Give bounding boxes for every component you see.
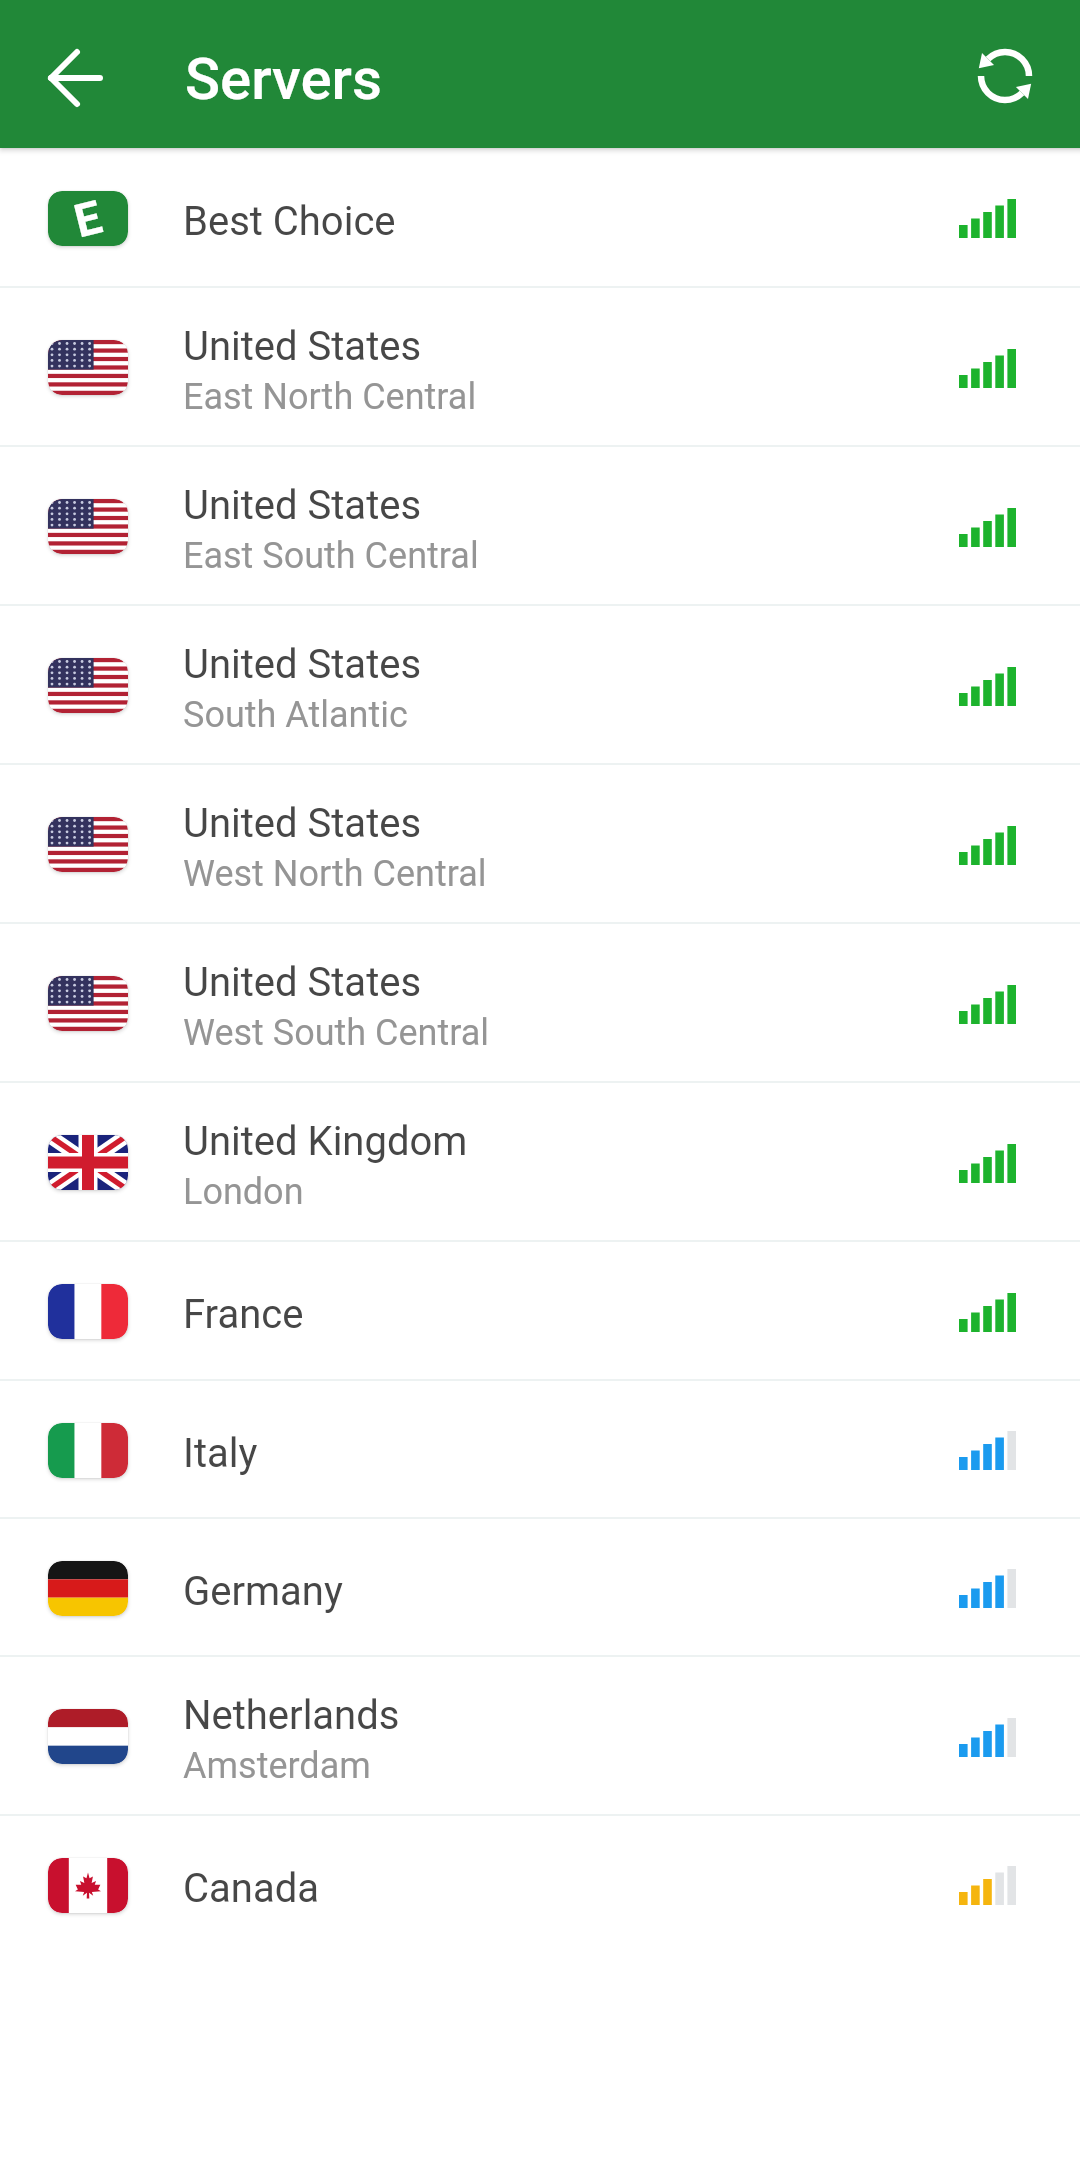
button[interactable]: United States bbox=[0, 924, 1080, 1083]
button[interactable]: United States bbox=[0, 288, 1080, 447]
staticText: United States bbox=[183, 482, 422, 529]
staticText: Canada bbox=[183, 1865, 319, 1912]
staticText: United Kingdom bbox=[183, 1118, 468, 1165]
staticText: London bbox=[183, 1171, 304, 1213]
staticText: United States bbox=[183, 641, 422, 688]
staticText: Amsterdam bbox=[183, 1745, 371, 1787]
button[interactable]: France bbox=[0, 1242, 1080, 1381]
staticText: South Atlantic bbox=[183, 694, 408, 736]
staticText: West North Central bbox=[183, 853, 487, 895]
staticText: United States bbox=[183, 800, 422, 847]
button[interactable]: Germany bbox=[0, 1519, 1080, 1657]
button[interactable]: United Kingdom bbox=[0, 1083, 1080, 1242]
button[interactable]: United States bbox=[0, 765, 1080, 924]
button[interactable] bbox=[40, 43, 110, 113]
staticText: United States bbox=[183, 959, 422, 1006]
staticText: E bbox=[69, 191, 107, 246]
staticText: East South Central bbox=[183, 535, 479, 577]
staticText: Italy bbox=[183, 1430, 258, 1477]
button[interactable]: United States bbox=[0, 447, 1080, 606]
staticText: France bbox=[183, 1291, 304, 1338]
button[interactable]: Italy bbox=[0, 1381, 1080, 1519]
staticText: East North Central bbox=[183, 376, 477, 418]
staticText: Germany bbox=[183, 1568, 343, 1615]
button[interactable]: United States bbox=[0, 606, 1080, 765]
staticText: United States bbox=[183, 323, 422, 370]
button[interactable] bbox=[970, 41, 1040, 111]
button[interactable]: Canada bbox=[0, 1816, 1080, 1954]
staticText: Best Choice bbox=[183, 198, 396, 245]
staticText: West South Central bbox=[183, 1012, 490, 1054]
button[interactable]: E bbox=[0, 148, 1080, 288]
staticText: Servers bbox=[185, 45, 382, 113]
staticText: Netherlands bbox=[183, 1692, 400, 1739]
button[interactable]: Netherlands bbox=[0, 1657, 1080, 1816]
